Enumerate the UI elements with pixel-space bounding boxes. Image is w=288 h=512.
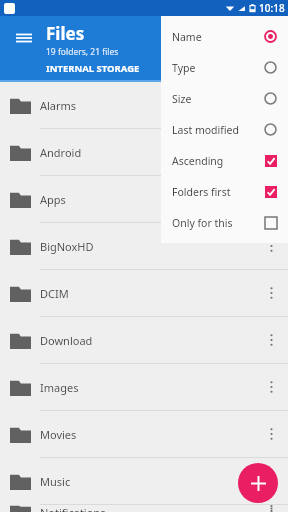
button[interactable]: Images xyxy=(0,364,288,410)
button[interactable]: Music xyxy=(0,458,288,504)
staticText: 19 folders, 21 files xyxy=(46,46,119,58)
button[interactable]: More options for Download xyxy=(254,317,288,363)
button[interactable]: Download xyxy=(0,317,288,363)
button[interactable]: More options for BigNoxHD xyxy=(254,223,288,269)
staticText: Folders first xyxy=(172,185,263,199)
staticText: Size xyxy=(172,92,264,106)
staticText: Type xyxy=(172,61,264,75)
button[interactable]: Apps xyxy=(0,176,288,222)
button[interactable]: More options for DCIM xyxy=(254,270,288,316)
staticText: Ascending xyxy=(172,154,263,168)
staticText: DCIM xyxy=(40,286,254,301)
staticText: Android xyxy=(40,145,254,160)
button[interactable]: Last modified xyxy=(161,114,288,145)
button[interactable]: More options for Alarms xyxy=(254,82,288,128)
button[interactable]: BigNoxHD xyxy=(0,223,288,269)
staticText: INTERNAL STORAGE xyxy=(46,62,140,75)
staticText: Name xyxy=(172,30,264,44)
staticText: Download xyxy=(40,333,254,348)
staticText: Files xyxy=(46,22,85,45)
staticText: Apps xyxy=(40,192,254,207)
button[interactable]: Add xyxy=(238,463,278,503)
button[interactable]: Size xyxy=(161,83,288,114)
staticText: BigNoxHD xyxy=(40,239,254,254)
button[interactable]: INTERNAL STORAGE xyxy=(46,62,140,75)
button[interactable]: More options for Android xyxy=(254,129,288,175)
button[interactable]: Android xyxy=(0,129,288,175)
button[interactable]: Only for this folder xyxy=(161,207,288,238)
button[interactable]: More options for Images xyxy=(254,364,288,410)
staticText: Images xyxy=(40,380,254,395)
button[interactable]: Alarms xyxy=(0,82,288,128)
button[interactable]: More options for Music xyxy=(254,458,288,504)
staticText: Music xyxy=(40,474,254,489)
button[interactable]: Folders first xyxy=(161,176,288,207)
button[interactable]: Ascending xyxy=(161,145,288,176)
staticText: Alarms xyxy=(40,98,254,113)
staticText: 10:18 xyxy=(259,1,285,15)
staticText: Last modified xyxy=(172,123,264,137)
button[interactable]: Notifications xyxy=(0,505,288,512)
button[interactable]: More options for Movies xyxy=(254,411,288,457)
button[interactable]: Open navigation menu xyxy=(8,22,40,54)
button[interactable]: Movies xyxy=(0,411,288,457)
staticText: Notifications xyxy=(40,505,254,512)
staticText: Movies xyxy=(40,427,254,442)
button[interactable]: More options for Notifications xyxy=(254,505,288,512)
staticText: Only for this folder xyxy=(172,216,263,230)
button[interactable]: Name xyxy=(161,21,288,52)
button[interactable]: DCIM xyxy=(0,270,288,316)
button[interactable]: More options for Apps xyxy=(254,176,288,222)
button[interactable]: Type xyxy=(161,52,288,83)
